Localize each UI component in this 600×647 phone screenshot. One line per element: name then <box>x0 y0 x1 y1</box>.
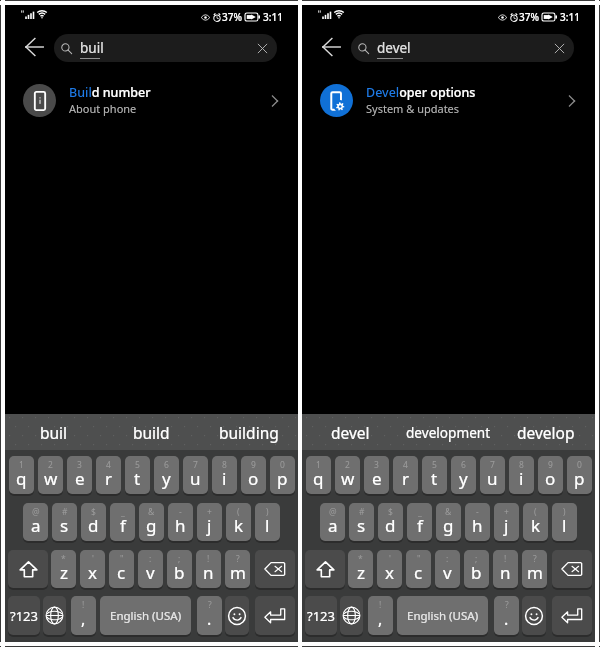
button[interactable]: # <box>349 503 374 541</box>
button[interactable]: 3 <box>67 456 92 494</box>
button[interactable]: ?123 <box>8 596 40 635</box>
button[interactable]: ? <box>197 596 222 635</box>
button[interactable]: * <box>51 550 76 588</box>
button[interactable]: ?123 <box>305 596 337 635</box>
button[interactable]: 2 <box>335 456 360 494</box>
button[interactable]: $ <box>81 503 106 541</box>
button[interactable]: buil <box>5 414 102 450</box>
button[interactable]: + <box>197 503 222 541</box>
button[interactable]: ) <box>255 503 280 541</box>
button[interactable]: ! <box>71 596 96 635</box>
button[interactable]: # <box>52 503 77 541</box>
button[interactable]: 0 <box>270 456 295 494</box>
button[interactable]: develop <box>497 414 595 450</box>
staticText: , <box>81 608 86 630</box>
staticText: x <box>88 561 97 584</box>
button[interactable]: ' <box>80 550 105 588</box>
button[interactable]: English (USA) <box>397 596 488 635</box>
button[interactable]: building <box>200 414 298 450</box>
button[interactable]: 1 <box>306 456 331 494</box>
button[interactable]: - <box>168 503 193 541</box>
button[interactable]: 4 <box>96 456 121 494</box>
button[interactable]: ; <box>167 550 192 588</box>
button[interactable]: 7 <box>183 456 208 494</box>
staticText: 2 <box>345 459 350 471</box>
button[interactable]: $ <box>378 503 403 541</box>
staticText: q <box>313 467 324 490</box>
button[interactable]: " <box>406 550 431 588</box>
button[interactable]: 2 <box>38 456 63 494</box>
staticText: ' <box>92 553 94 565</box>
button[interactable]: : <box>138 550 163 588</box>
button[interactable]: @ <box>23 503 48 541</box>
button[interactable]: ' <box>377 550 402 588</box>
button[interactable]: _ <box>407 503 432 541</box>
button[interactable]: Shift <box>8 550 48 588</box>
button[interactable]: Clear search <box>549 38 569 58</box>
staticText: ? <box>208 599 212 611</box>
button[interactable]: + <box>494 503 519 541</box>
button[interactable]: ( <box>523 503 548 541</box>
button[interactable]: devel <box>351 34 574 62</box>
button[interactable]: 5 <box>422 456 447 494</box>
button[interactable]: : <box>435 550 460 588</box>
button[interactable]: Enter <box>255 596 295 635</box>
button[interactable]: - <box>465 503 490 541</box>
button[interactable]: 1 <box>9 456 34 494</box>
button[interactable]: Enter <box>552 596 592 635</box>
button[interactable]: " <box>109 550 134 588</box>
button[interactable]: 9 <box>538 456 563 494</box>
button[interactable]: Backspace <box>552 550 592 588</box>
staticText: 9 <box>251 459 256 471</box>
button[interactable]: Switch language <box>43 596 66 635</box>
button[interactable]: 8 <box>212 456 237 494</box>
staticText: 5 <box>135 459 140 471</box>
staticText: 6 <box>164 459 169 471</box>
button[interactable]: Emoji <box>522 596 546 635</box>
button[interactable]: ) <box>552 503 577 541</box>
button[interactable]: Emoji <box>225 596 249 635</box>
button[interactable]: English (USA) <box>100 596 191 635</box>
button[interactable]: 0 <box>567 456 592 494</box>
button[interactable]: ! <box>493 550 518 588</box>
staticText: j <box>207 514 212 537</box>
button[interactable]: 3 <box>364 456 389 494</box>
staticText: r <box>105 467 113 490</box>
button[interactable]: 8 <box>509 456 534 494</box>
button[interactable]: 6 <box>451 456 476 494</box>
button[interactable]: & <box>436 503 461 541</box>
staticText: 4 <box>106 459 111 471</box>
staticText: y <box>459 467 468 490</box>
button[interactable]: _ <box>110 503 135 541</box>
staticText: m <box>230 561 246 584</box>
button[interactable]: Shift <box>305 550 345 588</box>
button[interactable]: Developer options <box>302 72 595 128</box>
button[interactable]: ! <box>196 550 221 588</box>
button[interactable]: devel <box>302 414 399 450</box>
button[interactable]: 6 <box>154 456 179 494</box>
button[interactable]: 5 <box>125 456 150 494</box>
button[interactable]: 4 <box>393 456 418 494</box>
button[interactable]: @ <box>320 503 345 541</box>
button[interactable]: development <box>399 414 497 450</box>
button[interactable]: buil <box>54 34 277 62</box>
button[interactable]: Back <box>22 35 46 59</box>
button[interactable]: build <box>102 414 200 450</box>
button[interactable]: ? <box>494 596 519 635</box>
button[interactable]: ; <box>464 550 489 588</box>
button[interactable]: * <box>348 550 373 588</box>
button[interactable]: Back <box>319 35 343 59</box>
button[interactable]: Backspace <box>255 550 295 588</box>
button[interactable]: 9 <box>241 456 266 494</box>
button[interactable]: Build number <box>5 72 298 128</box>
button[interactable]: Clear search <box>252 38 272 58</box>
button[interactable]: Switch language <box>340 596 363 635</box>
button[interactable]: ( <box>226 503 251 541</box>
button[interactable]: ! <box>368 596 393 635</box>
button[interactable]: & <box>139 503 164 541</box>
staticText: " <box>417 553 421 565</box>
staticText: # <box>62 506 68 518</box>
button[interactable]: ? <box>225 550 250 588</box>
button[interactable]: 7 <box>480 456 505 494</box>
button[interactable]: ? <box>522 550 547 588</box>
